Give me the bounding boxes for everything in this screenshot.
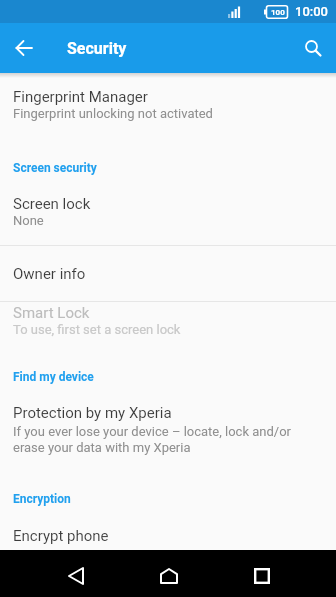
button[interactable] [290,25,336,71]
staticText: 10:00 [295,4,329,19]
staticText: None [13,213,44,228]
staticText: Smart Lock [13,304,90,322]
staticText: Fingerprint unlocking not activated [13,106,213,121]
staticText: 100 [271,8,285,17]
staticText: Screen security [13,161,97,175]
button[interactable]: Protection by my Xperia [0,404,336,455]
button[interactable]: Screen lock [0,195,336,228]
staticText: Encryption [13,492,71,506]
staticText: If you ever lose your device – locate, l… [13,424,323,455]
button[interactable]: Fingerprint Manager [0,73,336,121]
staticText: To use, first set a screen lock [13,322,181,337]
button[interactable]: Encrypt phone [0,527,336,545]
staticText: Screen lock [13,195,91,213]
staticText: Security [67,39,127,58]
staticText: Protection by my Xperia [13,404,172,422]
staticText: Fingerprint Manager [13,88,148,106]
staticText: Owner info [13,265,86,283]
button[interactable] [215,550,308,597]
button[interactable] [0,24,48,72]
staticText: Encrypt phone [13,527,109,545]
button[interactable] [122,550,215,597]
staticText: Find my device [13,370,94,384]
button[interactable]: Owner info [0,246,336,301]
button[interactable] [29,550,122,597]
